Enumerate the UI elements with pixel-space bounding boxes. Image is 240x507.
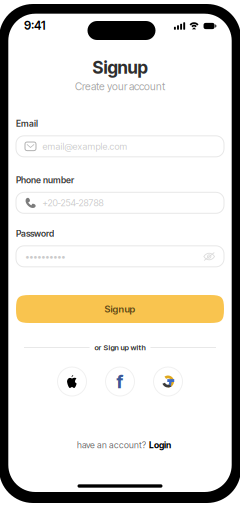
staticText: Signup	[104, 303, 135, 315]
staticText: Login	[149, 440, 171, 450]
staticText: +20-254-28788	[42, 197, 103, 208]
button[interactable]: Sign up with Apple	[57, 367, 86, 396]
button[interactable]: Signup	[16, 295, 224, 323]
staticText: Email	[16, 118, 38, 129]
staticText: or Sign up with	[94, 343, 145, 352]
button[interactable]: Sign up with Facebook	[105, 367, 134, 396]
staticText: 9:41	[24, 18, 46, 33]
staticText: f	[116, 370, 123, 393]
button[interactable]: Sign up with Google	[153, 367, 182, 396]
staticText: Password	[16, 228, 54, 239]
staticText: Create your account	[75, 80, 165, 93]
button[interactable]: have an account?	[77, 440, 171, 450]
staticText: Signup	[92, 57, 147, 78]
staticText: email@example.com	[42, 141, 127, 152]
staticText: Phone number	[16, 175, 74, 185]
staticText: ••••••••••	[25, 251, 65, 262]
staticText: have an account?	[77, 440, 146, 450]
